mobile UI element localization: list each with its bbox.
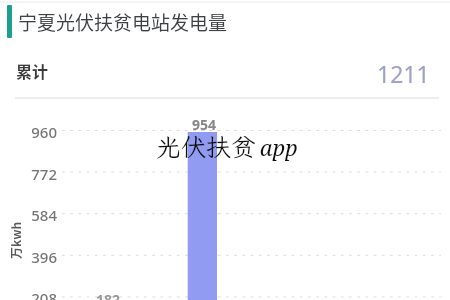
staticText: 584 xyxy=(27,205,57,225)
staticText: 万kwh xyxy=(7,221,23,259)
staticText: 396 xyxy=(27,247,57,267)
staticText: 累计 xyxy=(16,59,49,82)
button[interactable]: 累计 xyxy=(16,50,430,90)
staticText: 772 xyxy=(27,164,57,184)
staticText: 宁夏光伏扶贫电站发电量 xyxy=(18,8,228,36)
staticText: 208 xyxy=(27,288,57,300)
staticText: 182 xyxy=(96,290,121,300)
staticText: 954 xyxy=(192,115,217,134)
button[interactable]: 宁夏光伏扶贫电站发电量 xyxy=(0,5,450,38)
staticText: 光伏扶贫 app xyxy=(156,130,298,163)
staticText: 960 xyxy=(27,122,57,142)
staticText: 1211 xyxy=(377,58,430,89)
